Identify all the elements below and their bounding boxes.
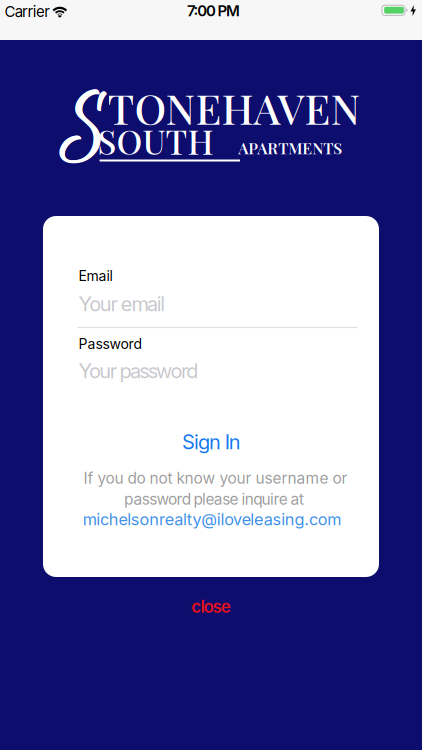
staticText: TONEHAVEN [107, 79, 360, 135]
button[interactable]: michelsonrealty@iloveleasing.com [83, 509, 341, 529]
button[interactable]: Your password [78, 359, 198, 383]
staticText: S [60, 72, 107, 185]
staticText: SOUTH [98, 118, 214, 163]
staticText: Email [78, 267, 112, 284]
staticText: S [61, 72, 108, 186]
staticText: password please inquire at [124, 490, 304, 508]
staticText: S [61, 72, 108, 185]
staticText: 7:00 PM [187, 2, 240, 20]
staticText: Sign In [182, 430, 241, 454]
staticText: S [60, 71, 107, 185]
staticText: APARTMENTS [238, 137, 342, 158]
staticText: Your email [78, 292, 165, 316]
button[interactable]: close [191, 596, 231, 617]
staticText: close [191, 596, 231, 617]
button[interactable]: Your email [78, 292, 165, 316]
staticText: Carrier [4, 2, 50, 20]
button[interactable]: Sign In [182, 430, 241, 454]
staticText: Your password [78, 359, 198, 383]
staticText: michelsonrealty@iloveleasing.com [83, 509, 341, 529]
staticText: If you do not know your username or [83, 469, 347, 487]
staticText: Password [78, 335, 142, 352]
